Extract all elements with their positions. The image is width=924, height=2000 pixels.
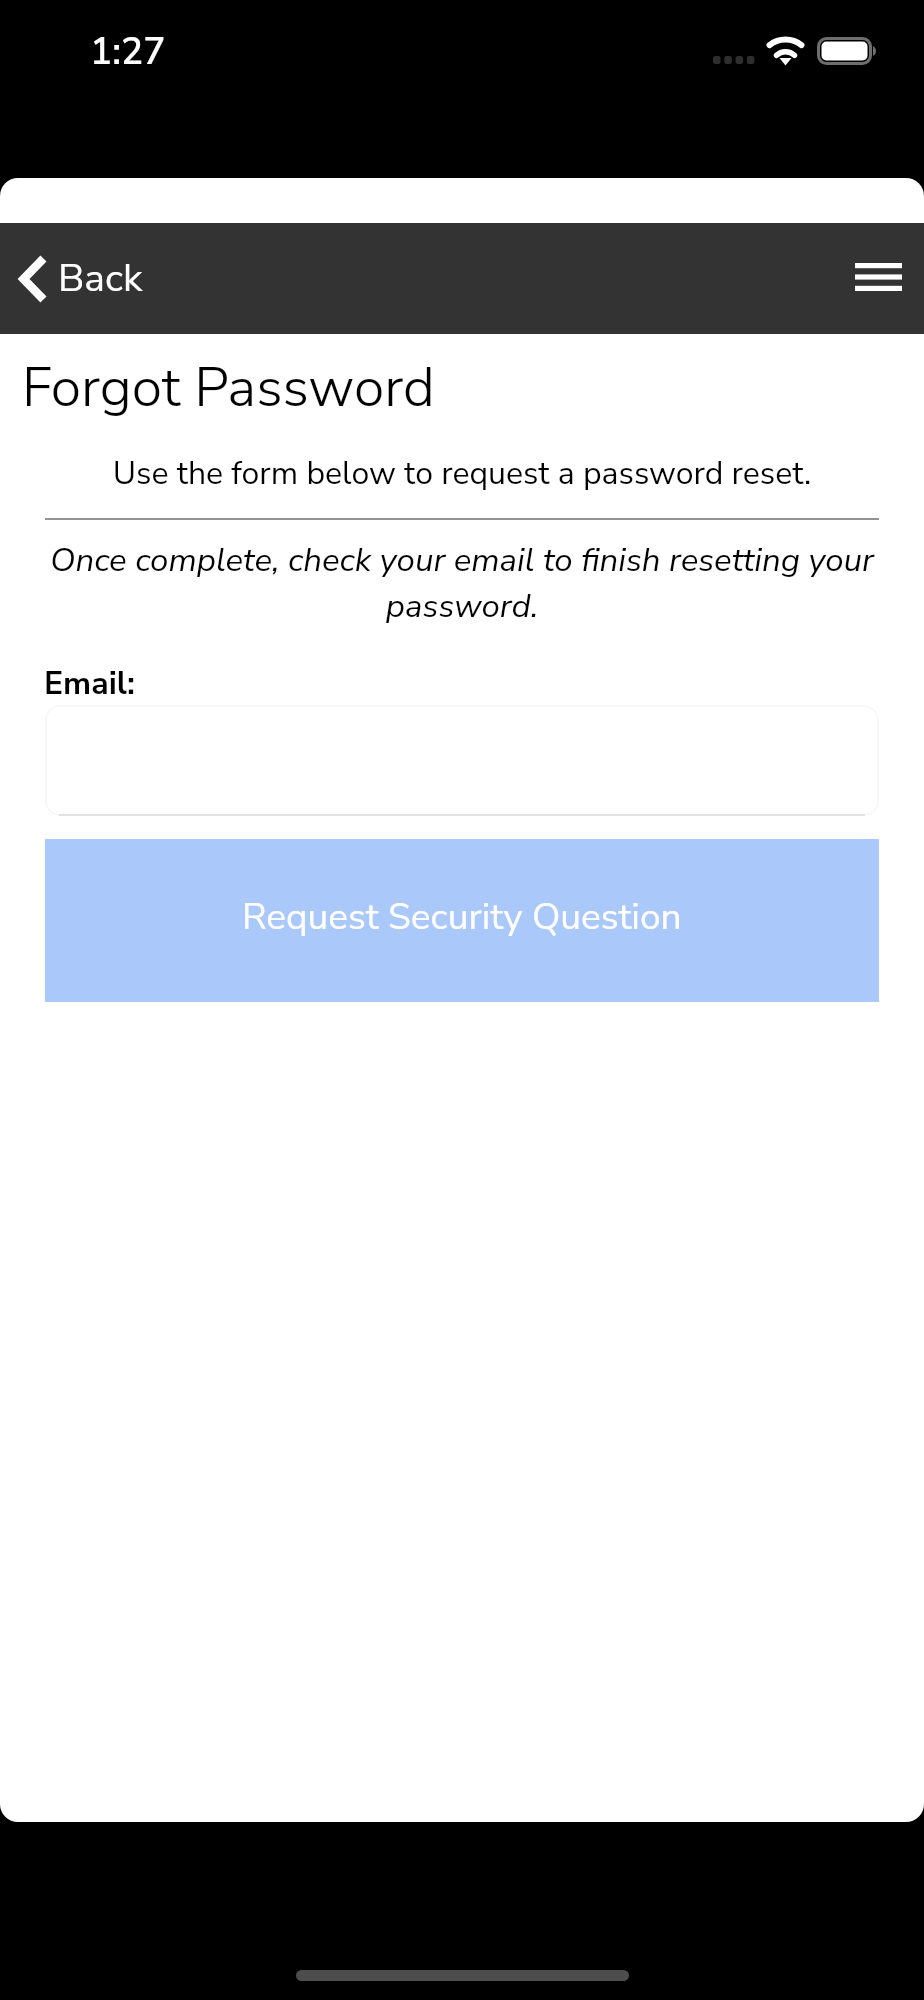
staticText: Back	[58, 252, 143, 305]
button[interactable]: Open menu	[834, 239, 924, 319]
button[interactable]: Back	[0, 242, 155, 315]
other: Cellular signal	[713, 56, 754, 64]
other: Battery full	[817, 37, 877, 65]
button[interactable]: Email address field	[45, 705, 879, 816]
button[interactable]: Request Security Question	[45, 839, 879, 1002]
other: Wi-Fi	[767, 36, 804, 65]
staticText: Forgot Password	[22, 350, 435, 425]
staticText: 1:27	[90, 27, 166, 77]
staticText: Once complete, check your email to finis…	[26, 538, 898, 629]
staticText: Email:	[44, 662, 135, 706]
staticText: Request Security Question	[242, 892, 682, 942]
staticText: Use the form below to request a password…	[0, 452, 924, 496]
